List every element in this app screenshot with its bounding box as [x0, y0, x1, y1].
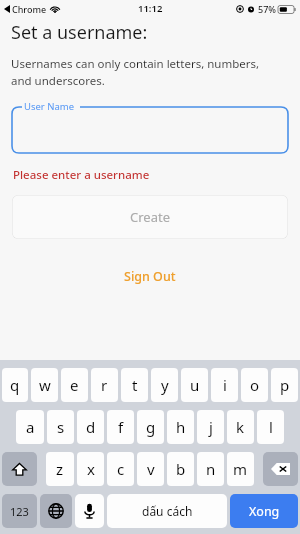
staticText: x: [87, 459, 95, 479]
staticText: 11:12: [138, 2, 163, 15]
staticText: c: [117, 459, 125, 479]
staticText: q: [10, 375, 20, 395]
button[interactable]: m: [227, 452, 254, 486]
staticText: i: [223, 375, 227, 395]
staticText: Please enter a username: [13, 167, 150, 183]
staticText: w: [39, 375, 51, 395]
button[interactable]: User Name: [12, 101, 288, 153]
button[interactable]: Change keyboard language: [40, 494, 72, 528]
button[interactable]: 123: [2, 494, 37, 528]
button[interactable]: l: [257, 410, 284, 444]
staticText: v: [147, 459, 155, 479]
button[interactable]: u: [181, 368, 208, 402]
staticText: Xong: [249, 503, 280, 520]
staticText: dấu cách: [142, 503, 193, 519]
button[interactable]: dấu cách: [107, 494, 227, 528]
staticText: h: [176, 417, 186, 437]
staticText: o: [250, 375, 260, 395]
staticText: Usernames can only contain letters, numb…: [11, 56, 260, 88]
staticText: p: [280, 375, 290, 395]
staticText: d: [86, 417, 96, 437]
button[interactable]: r: [91, 368, 118, 402]
staticText: n: [206, 459, 216, 479]
staticText: k: [236, 417, 245, 437]
button[interactable]: c: [107, 452, 134, 486]
staticText: User Name: [24, 100, 75, 113]
staticText: y: [161, 375, 169, 395]
staticText: z: [56, 459, 64, 479]
staticText: b: [176, 459, 186, 479]
button[interactable]: s: [47, 410, 74, 444]
button[interactable]: Xong: [230, 494, 298, 528]
staticText: 123: [10, 504, 29, 519]
staticText: 57%: [258, 3, 276, 15]
button[interactable]: n: [197, 452, 224, 486]
button[interactable]: i: [211, 368, 238, 402]
button[interactable]: Sign Out: [0, 265, 300, 287]
button[interactable]: t: [121, 368, 148, 402]
button[interactable]: Backspace: [263, 452, 298, 486]
staticText: j: [209, 417, 213, 437]
button[interactable]: y: [151, 368, 178, 402]
button[interactable]: d: [77, 410, 104, 444]
button[interactable]: j: [197, 410, 224, 444]
staticText: s: [57, 417, 65, 437]
staticText: Chrome: [12, 3, 47, 15]
button[interactable]: f: [107, 410, 134, 444]
staticText: f: [118, 417, 124, 437]
button[interactable]: g: [137, 410, 164, 444]
staticText: Set a username:: [11, 20, 148, 45]
button[interactable]: o: [241, 368, 268, 402]
staticText: r: [101, 375, 108, 395]
staticText: Sign Out: [124, 268, 176, 285]
button[interactable]: a: [16, 410, 44, 444]
button[interactable]: k: [227, 410, 254, 444]
button[interactable]: z: [46, 452, 74, 486]
button[interactable]: Create: [12, 195, 288, 239]
staticText: t: [132, 375, 138, 395]
staticText: a: [26, 417, 35, 437]
staticText: m: [233, 459, 248, 479]
button[interactable]: Voice input: [75, 494, 104, 528]
staticText: l: [269, 417, 273, 437]
staticText: Create: [130, 208, 170, 226]
button[interactable]: h: [167, 410, 194, 444]
staticText: e: [70, 375, 79, 395]
button[interactable]: w: [31, 368, 58, 402]
button[interactable]: q: [2, 368, 28, 402]
button[interactable]: Shift: [2, 452, 37, 486]
button[interactable]: p: [271, 368, 298, 402]
button[interactable]: e: [61, 368, 88, 402]
staticText: g: [146, 417, 156, 437]
staticText: u: [190, 375, 200, 395]
button[interactable]: b: [167, 452, 194, 486]
button[interactable]: v: [137, 452, 164, 486]
button[interactable]: x: [77, 452, 104, 486]
